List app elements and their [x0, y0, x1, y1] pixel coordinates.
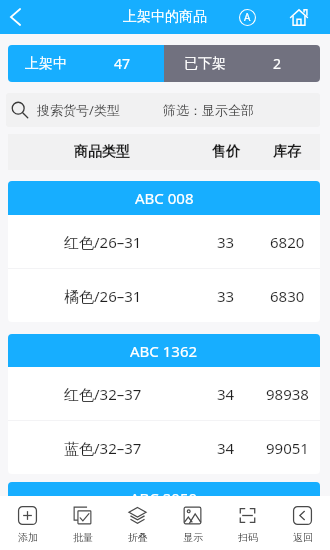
- staticText: 橘色/26–31: [64, 286, 142, 306]
- button[interactable]: 批量: [55, 496, 110, 550]
- staticText: 34: [217, 438, 235, 458]
- button[interactable]: Account: [231, 0, 263, 34]
- staticText: ABC 008: [135, 188, 194, 208]
- button[interactable]: 已下架: [164, 45, 320, 82]
- button[interactable]: 搜索货号/类型: [6, 93, 163, 127]
- staticText: 已下架: [184, 55, 226, 73]
- staticText: 6820: [270, 232, 305, 252]
- button[interactable]: ABC 1362: [8, 334, 320, 367]
- staticText: 2: [273, 54, 282, 73]
- staticText: ABC 2050: [130, 488, 198, 496]
- staticText: 扫码: [238, 531, 258, 544]
- staticText: 红色/32–37: [64, 384, 142, 404]
- staticText: 33: [217, 232, 235, 252]
- button[interactable]: 返回: [275, 496, 330, 550]
- staticText: 33: [217, 286, 235, 306]
- button[interactable]: 显示: [165, 496, 220, 550]
- staticText: A: [244, 10, 251, 24]
- staticText: 折叠: [128, 531, 148, 544]
- staticText: 显示: [183, 531, 203, 544]
- staticText: 批量: [73, 531, 93, 544]
- button[interactable]: 橘色/26–31: [8, 269, 320, 322]
- button[interactable]: 红色/26–31: [8, 215, 320, 268]
- button[interactable]: 添加: [0, 496, 55, 550]
- button[interactable]: ABC 2050: [8, 482, 320, 496]
- button[interactable]: ABC 008: [8, 181, 320, 215]
- button[interactable]: 折叠: [110, 496, 165, 550]
- button[interactable]: 上架中: [8, 45, 164, 82]
- button[interactable]: Home: [283, 0, 315, 34]
- staticText: 99051: [266, 438, 309, 458]
- staticText: 售价: [212, 143, 240, 161]
- staticText: 蓝色/32–37: [64, 438, 142, 458]
- staticText: 添加: [18, 531, 38, 544]
- button[interactable]: Back: [0, 0, 31, 34]
- staticText: 34: [217, 384, 235, 404]
- staticText: 商品类型: [74, 143, 130, 161]
- staticText: 返回: [293, 531, 313, 544]
- staticText: 库存: [273, 143, 301, 161]
- button[interactable]: 红色/32–37: [8, 367, 320, 420]
- button[interactable]: 蓝色/32–37: [8, 421, 320, 474]
- staticText: 47: [114, 54, 131, 73]
- staticText: 98938: [266, 384, 309, 404]
- staticText: 红色/26–31: [64, 232, 142, 252]
- button[interactable]: 扫码: [220, 496, 275, 550]
- staticText: 搜索货号/类型: [37, 101, 120, 119]
- staticText: 6830: [270, 286, 305, 306]
- staticText: 上架中的商品: [123, 8, 207, 26]
- button[interactable]: 筛选：显示全部: [163, 93, 320, 127]
- staticText: ABC 1362: [130, 341, 198, 361]
- staticText: 上架中: [25, 55, 67, 73]
- staticText: 筛选：显示全部: [163, 102, 254, 118]
